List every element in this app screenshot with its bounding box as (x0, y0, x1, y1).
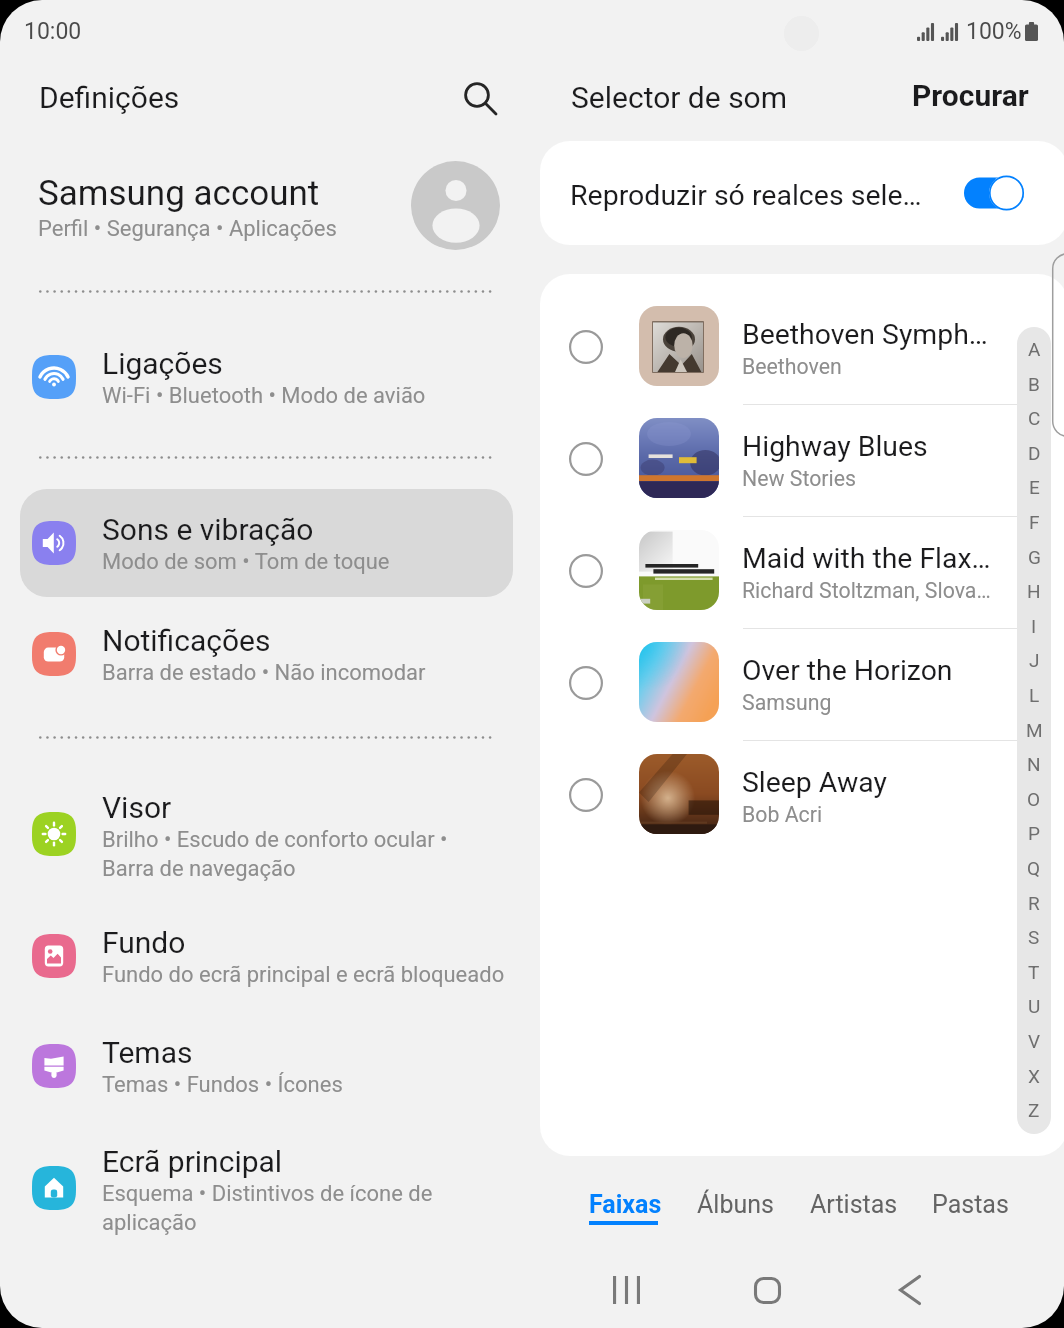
button[interactable]: Álbuns (681, 1174, 787, 1236)
other: Select Beethoven Symph… (569, 330, 603, 364)
staticText: Beethoven (742, 354, 1014, 379)
staticText: Bob Acri (742, 802, 1014, 827)
staticText: H (1027, 580, 1041, 602)
button[interactable] (20, 600, 513, 708)
staticText: Fundo (102, 925, 186, 960)
staticText: Procurar (912, 78, 1029, 113)
staticText: Temas • Fundos • Ícones (102, 1072, 522, 1098)
button[interactable] (20, 1134, 513, 1242)
button[interactable]: Procurar (888, 66, 1052, 124)
button[interactable] (20, 489, 513, 597)
staticText: N (1027, 753, 1041, 775)
staticText: Barra de estado • Não incomodar (102, 660, 522, 686)
staticText: A (1028, 338, 1041, 360)
staticText: Definições (39, 80, 180, 115)
staticText: Selector de som (571, 80, 788, 115)
staticText: Brilho • Escudo de conforto ocular • Bar… (102, 827, 522, 881)
staticText: Notificações (102, 623, 271, 658)
staticText: Faixas (589, 1190, 662, 1219)
staticText: Ligações (102, 346, 223, 381)
button[interactable] (540, 627, 1060, 739)
staticText: Pastas (932, 1190, 1009, 1219)
button[interactable] (8, 152, 524, 258)
staticText: L (1029, 684, 1040, 706)
staticText: I (1031, 615, 1037, 637)
staticText: New Stories (742, 466, 1014, 491)
staticText: Samsung (742, 690, 1014, 715)
staticText: X (1028, 1065, 1040, 1087)
button[interactable]: Search (452, 70, 508, 126)
staticText: Ecrã principal (102, 1144, 283, 1179)
staticText: 100% (966, 18, 1022, 45)
staticText: Reproduzir só realces sele… (570, 179, 970, 212)
staticText: V (1028, 1030, 1041, 1052)
staticText: M (1026, 719, 1043, 741)
staticText: C (1028, 407, 1041, 429)
staticText: Beethoven Symph… (742, 318, 1014, 351)
staticText: Sons e vibração (102, 512, 314, 547)
staticText: P (1028, 822, 1040, 844)
other: Select Sleep Away (569, 778, 603, 812)
other: Select Highway Blues (569, 442, 603, 476)
staticText: G (1028, 546, 1041, 568)
button[interactable]: Home (723, 1246, 811, 1328)
staticText: Q (1027, 857, 1041, 879)
button[interactable] (540, 141, 1064, 245)
button[interactable]: Faixas (573, 1174, 674, 1236)
button[interactable] (540, 515, 1060, 627)
staticText: O (1027, 788, 1041, 810)
staticText: Visor (102, 790, 172, 825)
button[interactable] (540, 403, 1060, 515)
staticText: Modo de som • Tom de toque (102, 549, 522, 575)
staticText: T (1028, 961, 1040, 983)
staticText: S (1028, 926, 1040, 948)
button[interactable] (20, 323, 513, 431)
button[interactable]: Artistas (794, 1174, 910, 1236)
staticText: J (1029, 649, 1040, 671)
staticText: Perfil • Segurança • Aplicações (38, 216, 337, 242)
staticText: B (1028, 373, 1040, 395)
button[interactable] (20, 780, 513, 888)
staticText: Over the Horizon (742, 654, 1014, 687)
other: Select Over the Horizon (569, 666, 603, 700)
staticText: R (1028, 892, 1040, 914)
button[interactable] (540, 291, 1060, 403)
button[interactable]: Pastas (916, 1174, 1022, 1236)
button[interactable] (20, 902, 513, 1010)
staticText: Maid with the Flax… (742, 542, 1014, 575)
staticText: E (1029, 476, 1040, 498)
button[interactable]: Index (1017, 327, 1051, 1134)
other: Select Maid with the Flax… (569, 554, 603, 588)
staticText: Samsung account (38, 173, 320, 214)
button[interactable] (20, 1012, 513, 1120)
staticText: Wi-Fi • Bluetooth • Modo de avião (102, 383, 522, 409)
staticText: Fundo do ecrã principal e ecrã bloqueado (102, 962, 522, 988)
button[interactable]: Recents (582, 1246, 670, 1328)
staticText: Sleep Away (742, 766, 1014, 799)
staticText: Z (1028, 1099, 1040, 1121)
staticText: F (1029, 511, 1040, 533)
staticText: Esquema • Distintivos de ícone de aplica… (102, 1181, 522, 1235)
staticText: 10:00 (24, 18, 82, 45)
staticText: D (1028, 442, 1041, 464)
staticText: Temas (102, 1035, 193, 1070)
button[interactable] (540, 739, 1060, 851)
button[interactable] (20, 489, 513, 597)
staticText: Richard Stoltzman, Slova… (742, 578, 1014, 603)
staticText: Artistas (810, 1190, 898, 1219)
staticText: Álbuns (697, 1190, 774, 1219)
staticText: U (1028, 995, 1041, 1017)
staticText: Highway Blues (742, 430, 1014, 463)
button[interactable]: Back (866, 1246, 954, 1328)
button[interactable]: Toggle (964, 174, 1024, 212)
